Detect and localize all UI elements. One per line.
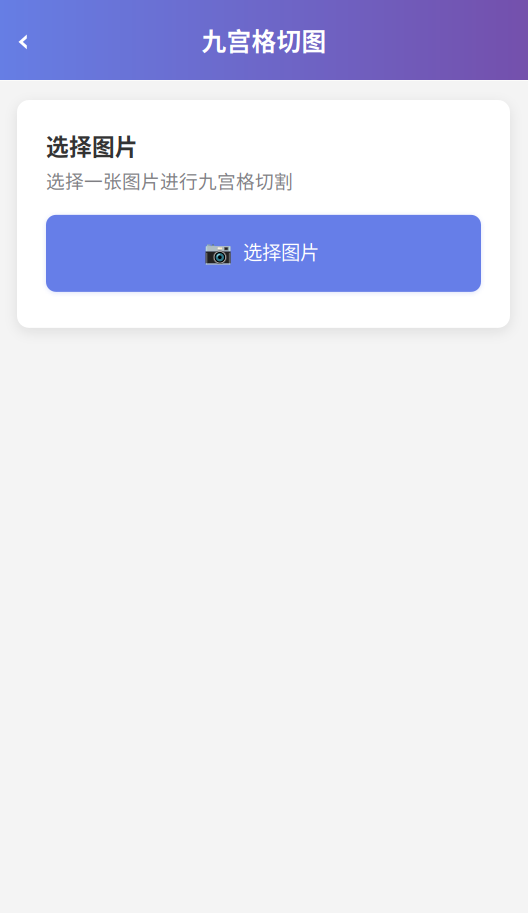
staticText: 选择图片 [46,129,138,162]
staticText: 选择一张图片进行九宫格切割 [46,167,293,194]
staticText: 九宫格切图 [201,22,326,58]
staticText: 📷 [204,239,232,266]
staticText: 选择图片 [243,237,319,265]
button[interactable]: Back [1,18,45,62]
button[interactable]: 选择图片 [46,215,481,292]
